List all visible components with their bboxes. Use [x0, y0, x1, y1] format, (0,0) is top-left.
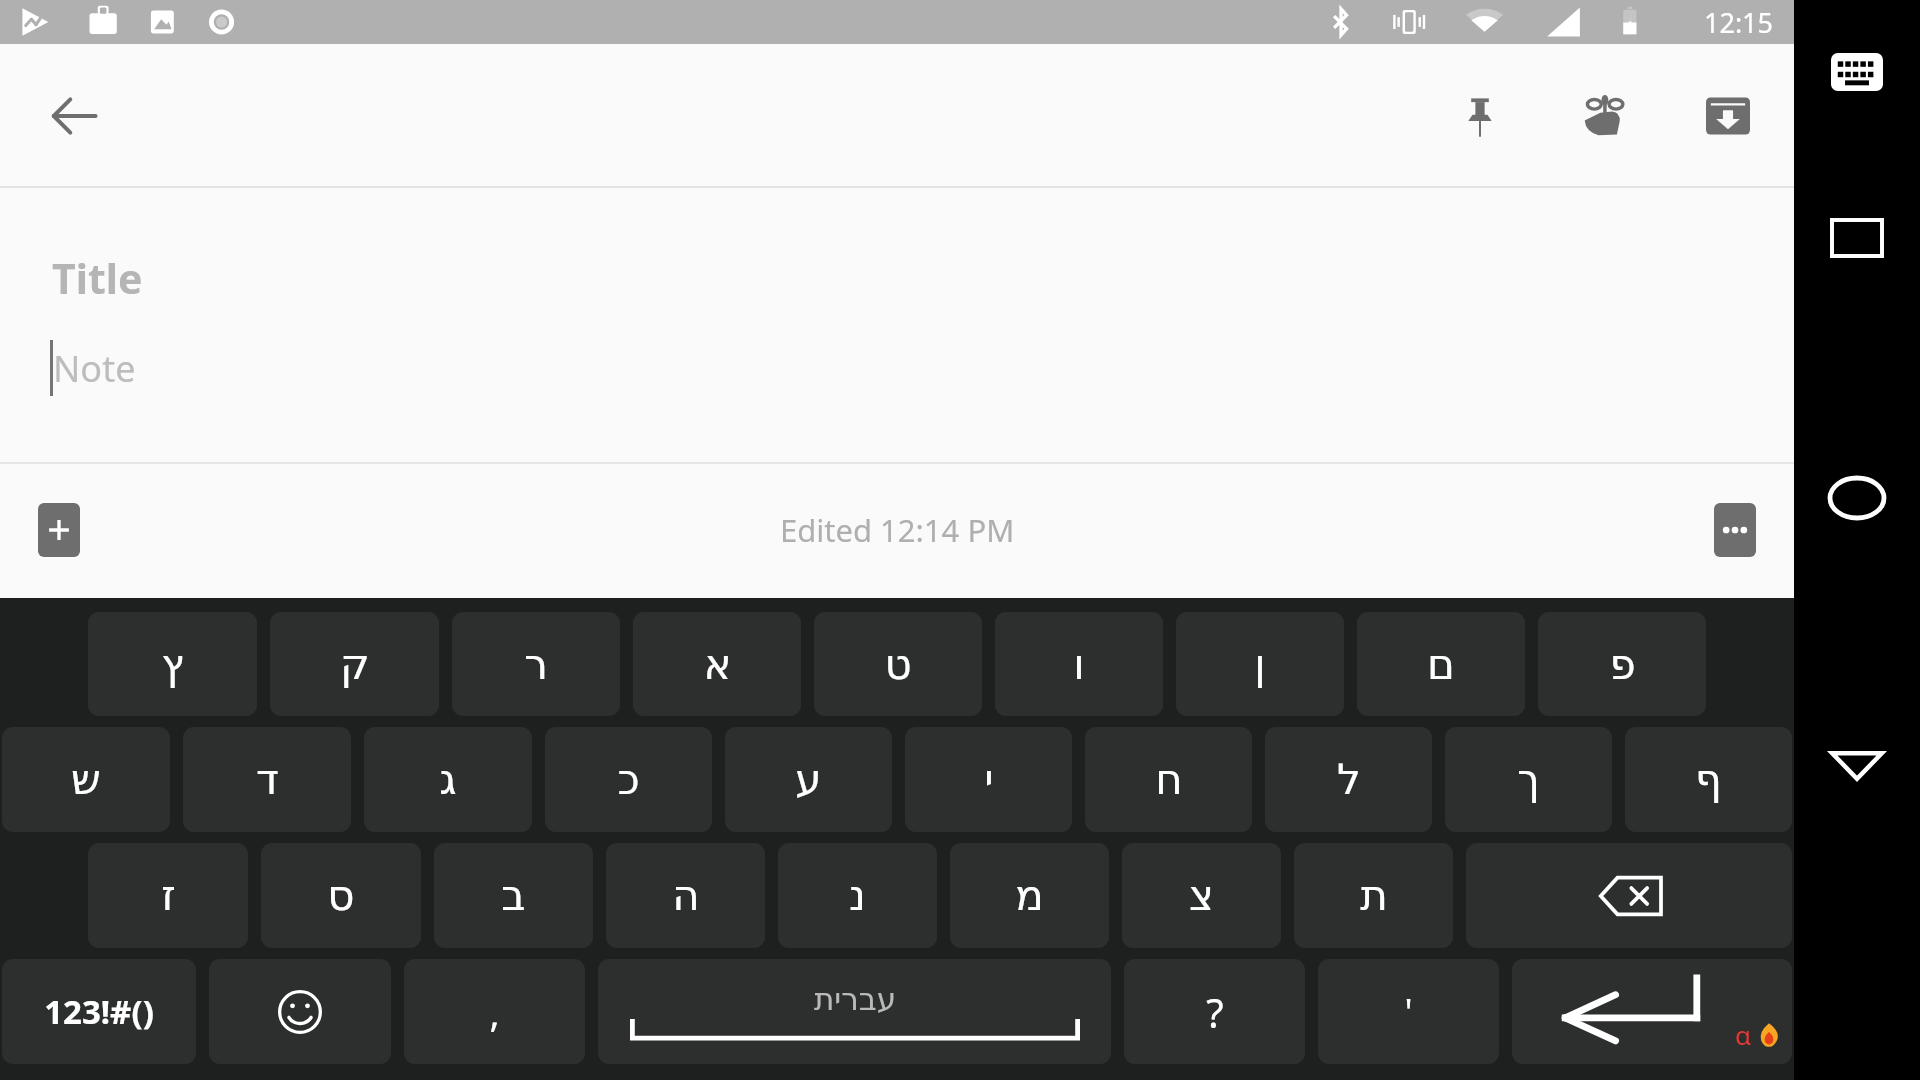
button[interactable]: More options [1714, 503, 1756, 557]
button[interactable]: Back [1813, 722, 1901, 810]
button[interactable]: Emoji [209, 959, 391, 1064]
button[interactable]: ר [452, 612, 620, 716]
staticText: ך [1517, 755, 1540, 804]
staticText: עברית [814, 981, 897, 1017]
staticText: ז [161, 871, 176, 920]
staticText: α [1735, 1017, 1752, 1052]
button[interactable]: Home [1813, 454, 1901, 542]
staticText: ח [1155, 755, 1183, 804]
button[interactable]: ז [88, 843, 248, 948]
staticText: ה [672, 871, 700, 920]
button[interactable]: ב [434, 843, 593, 948]
button[interactable]: א [633, 612, 801, 716]
staticText: ו [1073, 640, 1085, 689]
staticText: פ [1609, 640, 1636, 689]
button[interactable]: צ [1122, 843, 1281, 948]
button[interactable]: ל [1265, 727, 1432, 832]
button[interactable]: ס [261, 843, 421, 948]
staticText: ס [327, 871, 355, 920]
button[interactable]: Show keyboard [1813, 28, 1901, 116]
button[interactable]: Space [598, 959, 1111, 1064]
button[interactable]: ש [2, 727, 170, 832]
staticText: ר [524, 640, 548, 689]
staticText: ? [1206, 985, 1224, 1039]
button[interactable]: ע [725, 727, 892, 832]
button[interactable]: י [905, 727, 1072, 832]
button[interactable]: ת [1294, 843, 1453, 948]
button[interactable]: מ [950, 843, 1109, 948]
button[interactable]: Add [38, 503, 80, 557]
button[interactable]: Archive [1680, 68, 1776, 164]
button[interactable]: ף [1625, 727, 1792, 832]
button[interactable]: Enter [1512, 959, 1792, 1064]
staticText: 12:15 [1704, 4, 1774, 41]
button[interactable]: ד [183, 727, 351, 832]
staticText: ל [1337, 755, 1361, 804]
button[interactable]: ו [995, 612, 1163, 716]
button[interactable]: Note [50, 340, 1794, 396]
button[interactable]: ח [1085, 727, 1252, 832]
staticText: ט [884, 640, 912, 689]
staticText: ב [501, 871, 526, 920]
staticText: מ [1015, 871, 1044, 920]
button[interactable]: Pin [1432, 68, 1528, 164]
button[interactable]: ם [1357, 612, 1525, 716]
button[interactable]: Backspace [1466, 843, 1792, 948]
button[interactable]: ן [1176, 612, 1344, 716]
button[interactable]: ך [1445, 727, 1612, 832]
button[interactable]: נ [778, 843, 937, 948]
button[interactable]: 123!#() [2, 959, 196, 1064]
button[interactable]: Recents [1813, 194, 1901, 282]
button[interactable]: ה [606, 843, 765, 948]
staticText: ע [795, 755, 822, 804]
staticText: ד [256, 755, 279, 804]
staticText: ן [1254, 640, 1266, 689]
staticText: ם [1427, 640, 1455, 689]
staticText: ' [1404, 987, 1413, 1036]
staticText: 123!#() [44, 989, 154, 1034]
staticText: צ [1189, 871, 1214, 920]
button[interactable]: ט [814, 612, 982, 716]
button[interactable]: ' [1318, 959, 1499, 1064]
button[interactable]: כ [545, 727, 712, 832]
staticText: ג [439, 755, 457, 804]
staticText: י [984, 755, 994, 804]
staticText: כ [617, 755, 640, 804]
staticText: נ [849, 871, 866, 920]
button[interactable]: , [404, 959, 585, 1064]
button[interactable]: Reminder [1556, 68, 1652, 164]
button[interactable]: ? [1124, 959, 1305, 1064]
staticText: ק [340, 640, 370, 689]
staticText: Title [52, 250, 143, 306]
button[interactable]: Title [52, 250, 1794, 306]
staticText: ש [71, 755, 101, 804]
button[interactable]: ק [270, 612, 439, 716]
staticText: Edited 12:14 PM [780, 509, 1015, 551]
button[interactable]: ג [364, 727, 532, 832]
button[interactable]: Back [26, 68, 122, 164]
staticText: Note [53, 344, 136, 393]
staticText: א [703, 640, 732, 689]
button[interactable]: ץ [88, 612, 257, 716]
button[interactable]: פ [1538, 612, 1706, 716]
staticText: ף [1695, 755, 1722, 804]
staticText: ץ [161, 640, 184, 689]
staticText: ת [1360, 871, 1388, 920]
staticText: , [489, 986, 500, 1038]
